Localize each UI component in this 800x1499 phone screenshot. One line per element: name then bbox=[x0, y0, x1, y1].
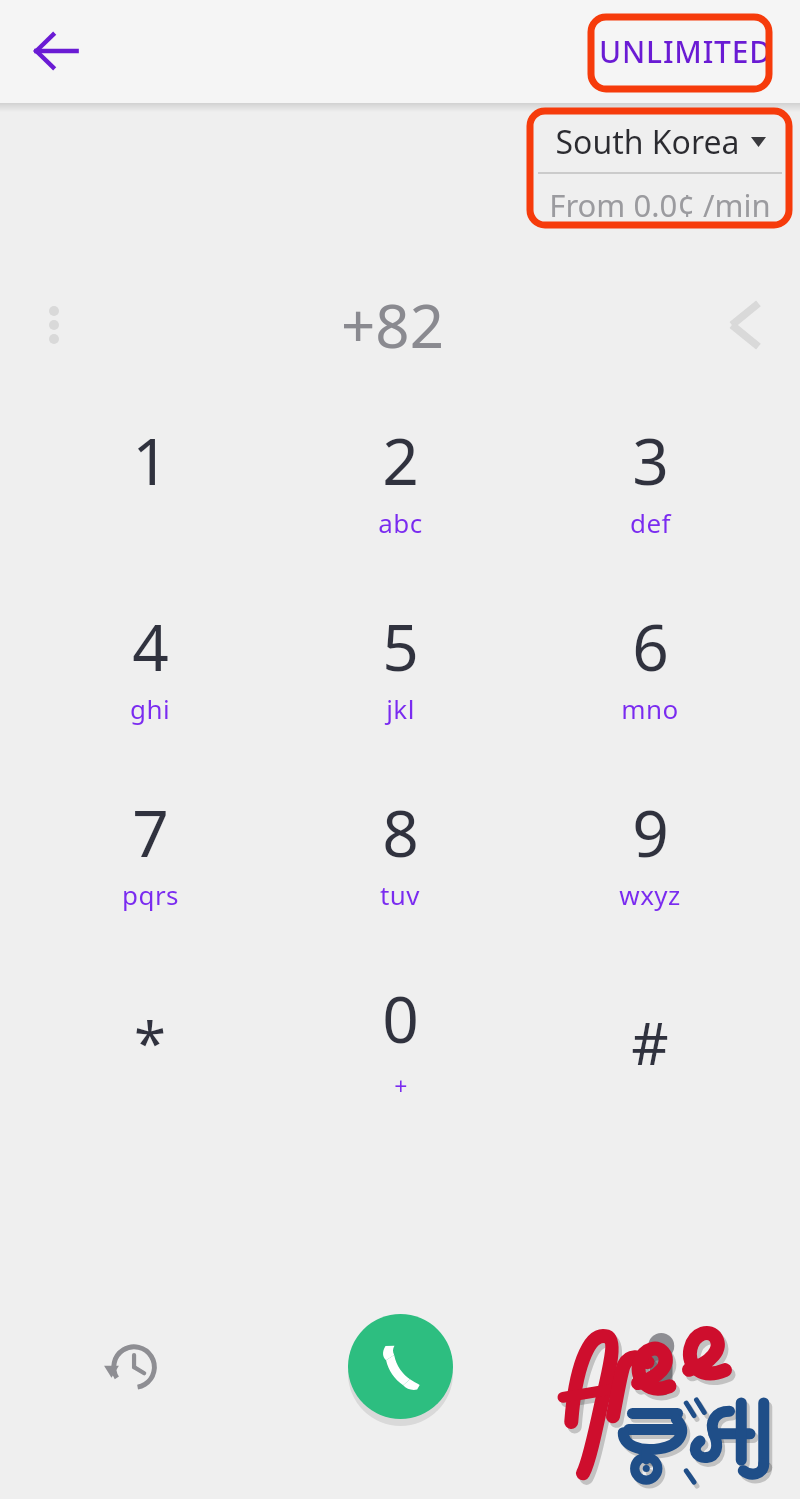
staticText: abc bbox=[378, 505, 423, 540]
staticText: 6 bbox=[632, 603, 669, 690]
button[interactable]: 0 bbox=[295, 975, 505, 1153]
staticText: +82 bbox=[341, 284, 444, 366]
staticText: 2 bbox=[382, 417, 419, 504]
staticText: # bbox=[631, 1003, 669, 1082]
staticText: UNLIMITED bbox=[599, 31, 772, 72]
staticText: 0 bbox=[382, 975, 419, 1062]
staticText: 9 bbox=[632, 789, 669, 876]
staticText: jkl bbox=[386, 691, 415, 726]
staticText: 8 bbox=[382, 789, 419, 876]
staticText: South Korea bbox=[555, 120, 740, 164]
button[interactable]: # bbox=[545, 975, 755, 1153]
staticText: tuv bbox=[380, 877, 420, 912]
button[interactable]: 5 bbox=[295, 603, 505, 781]
staticText: * bbox=[134, 1003, 166, 1082]
staticText: From 0.0¢ /min bbox=[549, 184, 771, 226]
button[interactable]: More options bbox=[14, 285, 94, 365]
button[interactable]: 6 bbox=[545, 603, 755, 781]
staticText: 7 bbox=[132, 789, 169, 876]
staticText: ghi bbox=[130, 691, 170, 726]
button[interactable]: 7 bbox=[45, 789, 255, 967]
staticText: 4 bbox=[132, 603, 169, 690]
staticText: + bbox=[394, 1070, 408, 1101]
button[interactable]: South Korea bbox=[538, 120, 782, 226]
staticText: mno bbox=[621, 691, 679, 726]
button[interactable]: * bbox=[45, 975, 255, 1153]
button[interactable]: 3 bbox=[545, 417, 755, 595]
staticText: 1 bbox=[132, 417, 169, 504]
staticText: 5 bbox=[382, 603, 419, 690]
button[interactable]: Call history bbox=[82, 1318, 178, 1414]
button[interactable]: 9 bbox=[545, 789, 755, 967]
staticText: pqrs bbox=[122, 877, 179, 912]
button[interactable]: Back bbox=[14, 9, 98, 93]
button[interactable]: Call bbox=[348, 1314, 453, 1419]
staticText: wxyz bbox=[619, 877, 681, 912]
staticText: 3 bbox=[632, 417, 669, 504]
button[interactable]: 1 bbox=[45, 417, 255, 595]
button[interactable]: 4 bbox=[45, 603, 255, 781]
button[interactable]: UNLIMITED bbox=[587, 21, 784, 82]
button[interactable]: Backspace bbox=[705, 285, 785, 365]
button[interactable]: 8 bbox=[295, 789, 505, 967]
button[interactable]: 2 bbox=[295, 417, 505, 595]
staticText: def bbox=[630, 505, 671, 540]
button[interactable]: free logo bbox=[550, 1308, 800, 1498]
